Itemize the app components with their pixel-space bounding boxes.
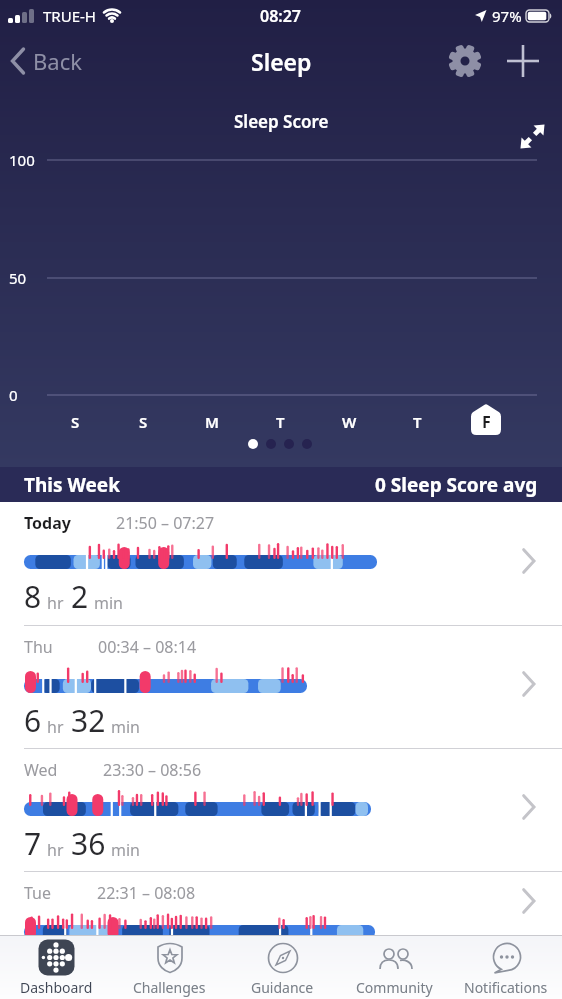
staticText: hr xyxy=(47,839,64,861)
staticText: 32 xyxy=(71,700,106,741)
staticText: 2 xyxy=(71,576,89,617)
staticText: 23:30 – 08:56 xyxy=(103,759,202,781)
staticText: 00:34 – 08:14 xyxy=(98,636,197,658)
staticText: 8 xyxy=(24,576,42,617)
staticText: T xyxy=(276,412,285,432)
button[interactable]: Tue xyxy=(0,872,562,935)
staticText: Sleep Score xyxy=(234,110,329,133)
staticText: S xyxy=(71,412,80,432)
staticText: Notifications xyxy=(464,978,548,997)
staticText: Tue xyxy=(24,882,52,904)
staticText: 21:50 – 07:27 xyxy=(116,512,215,534)
staticText: Dashboard xyxy=(20,978,93,997)
staticText: Community xyxy=(356,978,433,997)
staticText: 36 xyxy=(71,823,106,864)
button[interactable]: Challenges xyxy=(113,936,226,999)
staticText: 08:27 xyxy=(260,5,302,27)
staticText: TRUE-H xyxy=(43,6,96,26)
button[interactable]: Today xyxy=(0,502,562,625)
staticText: 7 xyxy=(24,823,42,864)
button[interactable] xyxy=(448,44,482,78)
button[interactable]: Thu xyxy=(0,626,562,748)
staticText: 50 xyxy=(9,268,27,288)
staticText: min xyxy=(94,592,123,614)
staticText: 100 xyxy=(9,150,35,170)
staticText: T xyxy=(413,412,422,432)
staticText: 0 xyxy=(9,385,18,405)
staticText: S xyxy=(139,412,148,432)
staticText: Wed xyxy=(24,759,58,781)
button[interactable]: Dashboard xyxy=(0,936,113,999)
staticText: Today xyxy=(24,512,71,534)
staticText: min xyxy=(111,716,140,738)
staticText: hr xyxy=(47,592,64,614)
staticText: F xyxy=(482,411,491,433)
button[interactable]: Guidance xyxy=(226,936,338,999)
button[interactable]: Back xyxy=(10,46,82,76)
button[interactable]: Community xyxy=(338,936,450,999)
staticText: 0 Sleep Score avg xyxy=(375,472,538,498)
button[interactable]: F xyxy=(471,404,501,435)
staticText: Sleep xyxy=(251,46,312,77)
staticText: min xyxy=(111,839,140,861)
staticText: Challenges xyxy=(133,978,206,997)
staticText: 22:31 – 08:08 xyxy=(97,882,196,904)
button[interactable] xyxy=(506,44,540,78)
button[interactable]: Wed xyxy=(0,749,562,871)
staticText: hr xyxy=(47,716,64,738)
staticText: M xyxy=(205,412,219,432)
staticText: Guidance xyxy=(251,978,314,997)
button[interactable]: Notifications xyxy=(450,936,562,999)
staticText: Thu xyxy=(24,636,53,658)
staticText: Back xyxy=(33,46,82,76)
staticText: 97% xyxy=(492,6,522,26)
staticText: 6 xyxy=(24,700,42,741)
staticText: This Week xyxy=(24,472,120,498)
staticText: W xyxy=(342,412,357,432)
